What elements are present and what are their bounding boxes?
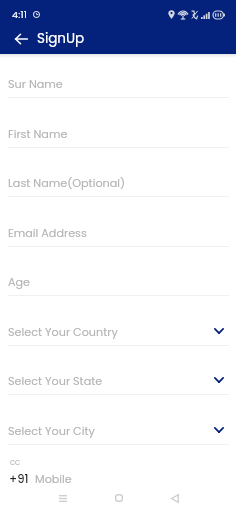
- staticText: Sur Name: [8, 76, 63, 92]
- staticText: Last Name(Optional): [8, 175, 126, 191]
- staticText: Email Address: [8, 225, 87, 241]
- button[interactable]: Select Your State: [0, 363, 236, 413]
- button[interactable]: Select Your City: [0, 413, 236, 463]
- staticText: Select Your City: [8, 423, 95, 439]
- staticText: Select Your Country: [8, 324, 118, 340]
- button[interactable]: Home: [91, 485, 147, 511]
- button[interactable]: Recent apps: [35, 485, 91, 511]
- staticText: Mobile: [35, 471, 72, 487]
- button[interactable]: Last Name(Optional): [0, 165, 236, 215]
- staticText: Select Your State: [8, 373, 103, 389]
- button[interactable]: CC: [0, 444, 236, 488]
- button[interactable]: Back: [147, 485, 203, 511]
- staticText: Age: [8, 274, 31, 290]
- button[interactable]: First Name: [0, 116, 236, 166]
- staticText: CC: [10, 458, 21, 467]
- button[interactable]: Sur Name: [0, 66, 236, 116]
- button[interactable]: Back: [0, 25, 42, 54]
- button[interactable]: Select Your Country: [0, 314, 236, 364]
- staticText: SignUp: [37, 29, 85, 48]
- button[interactable]: Age: [0, 264, 236, 314]
- staticText: 4:11: [12, 8, 27, 21]
- staticText: +91: [9, 471, 29, 487]
- staticText: First Name: [8, 126, 68, 142]
- button[interactable]: Email Address: [0, 215, 236, 265]
